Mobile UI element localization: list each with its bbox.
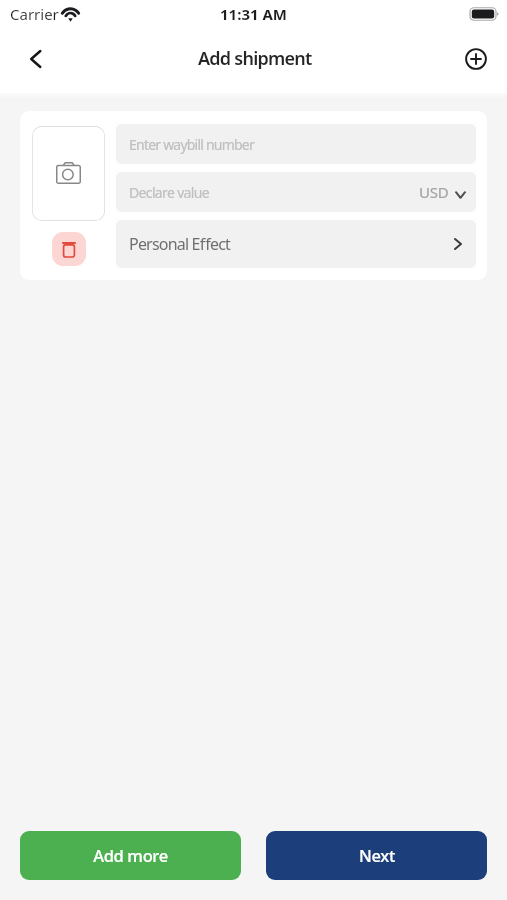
button[interactable]: Add more xyxy=(20,831,241,880)
staticText: 11:31 AM xyxy=(220,4,287,24)
button[interactable]: Add xyxy=(459,42,493,76)
button[interactable]: Enter waybill number xyxy=(116,124,476,164)
staticText: USD xyxy=(419,182,449,202)
button[interactable]: Back xyxy=(19,42,53,76)
staticText: Next xyxy=(359,844,395,866)
staticText: Carrier xyxy=(10,4,59,24)
button[interactable]: Next xyxy=(266,831,487,880)
button[interactable]: Add photo xyxy=(32,126,105,221)
staticText: Enter waybill number xyxy=(129,135,254,154)
button[interactable]: Delete xyxy=(52,232,86,266)
staticText: Add more xyxy=(93,844,168,866)
staticText: Personal Effect xyxy=(129,233,230,255)
staticText: Add shipment xyxy=(198,46,312,71)
button[interactable]: Personal Effect xyxy=(116,220,476,268)
button[interactable]: Declare value xyxy=(116,172,476,212)
staticText: Declare value xyxy=(129,183,210,202)
